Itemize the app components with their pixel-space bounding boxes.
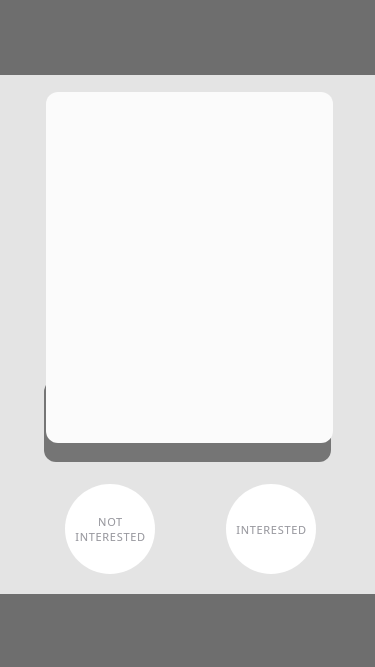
staticText: NOT [98, 514, 123, 529]
staticText: INTERESTED [75, 529, 146, 544]
staticText: INTERESTED [236, 522, 307, 537]
button[interactable]: Not interested [65, 484, 155, 574]
button[interactable]: Interested [226, 484, 316, 574]
